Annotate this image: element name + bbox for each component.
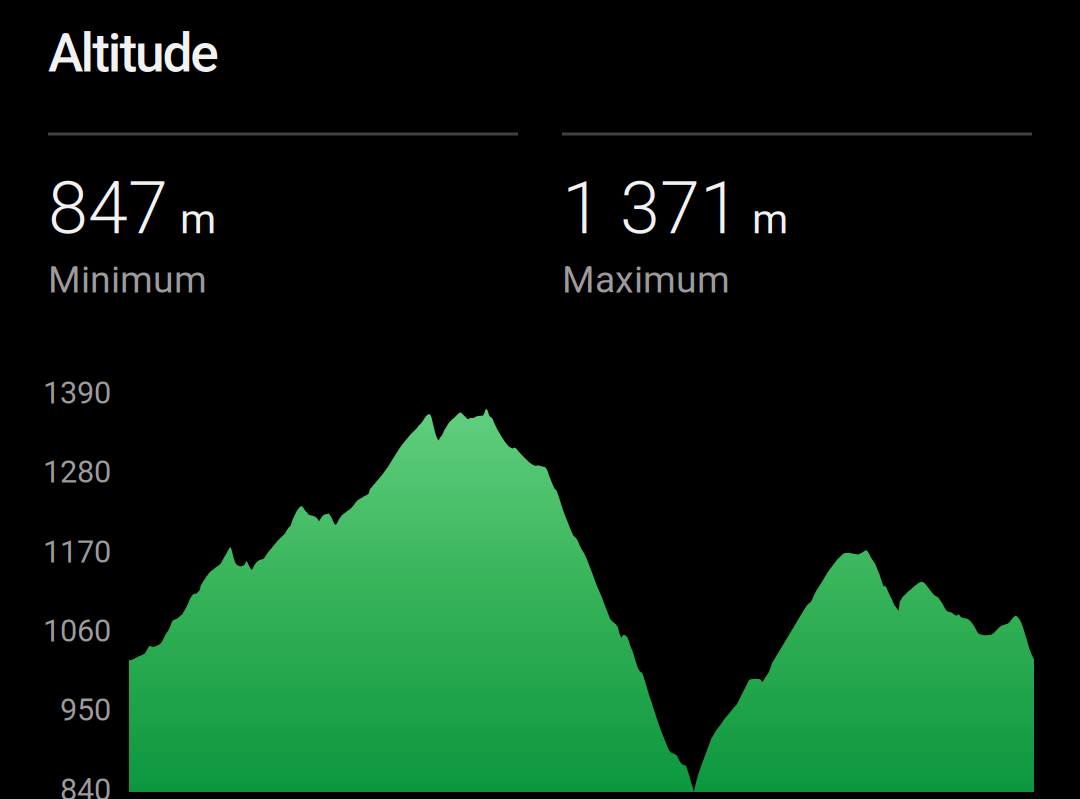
staticText: 847 xyxy=(48,166,168,251)
staticText: 1 371 xyxy=(562,166,740,251)
button[interactable]: 847 xyxy=(48,132,518,302)
staticText: m xyxy=(752,195,788,243)
staticText: Altitude xyxy=(48,22,219,84)
staticText: 1390 xyxy=(43,375,111,411)
staticText: 1280 xyxy=(43,454,111,490)
staticText: 950 xyxy=(60,692,111,728)
staticText: Maximum xyxy=(562,258,730,302)
staticText: 1170 xyxy=(43,534,111,570)
button[interactable]: 1 371 xyxy=(562,132,1032,302)
staticText: Minimum xyxy=(48,258,207,302)
staticText: 1060 xyxy=(43,613,111,649)
staticText: 840 xyxy=(60,772,111,799)
staticText: m xyxy=(180,195,216,243)
